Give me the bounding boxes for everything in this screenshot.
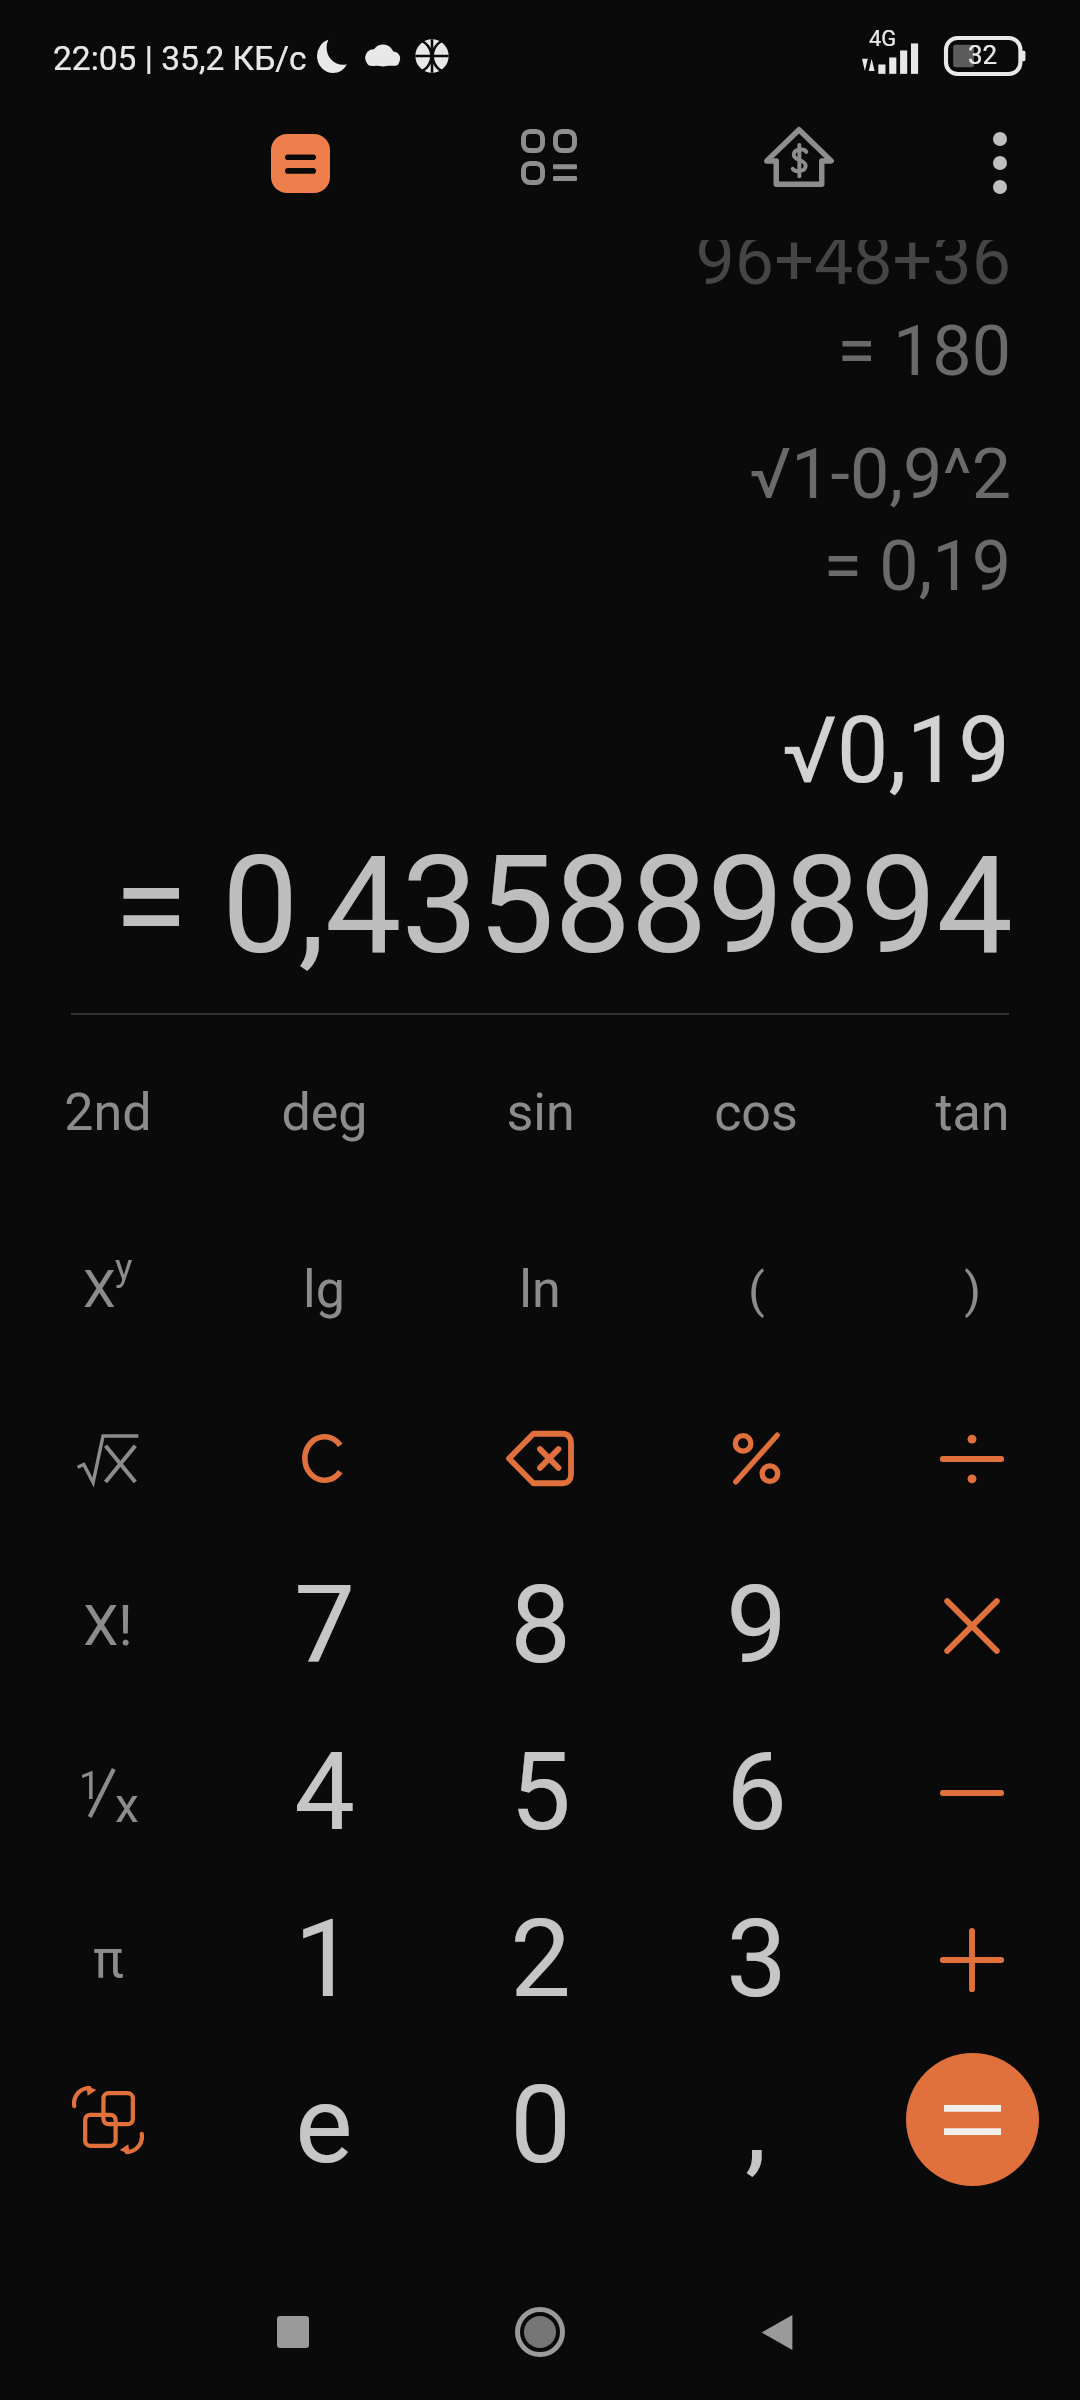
staticText: X! (83, 1593, 133, 1659)
other: Percent (733, 1432, 780, 1485)
button[interactable]: 2nd (0, 1029, 216, 1196)
staticText: y (115, 1246, 133, 1289)
button[interactable]: Multiply (864, 1542, 1080, 1709)
button[interactable]: Back (729, 2284, 825, 2380)
button[interactable]: Backspace (432, 1375, 648, 1542)
button[interactable]: 9 (648, 1542, 864, 1709)
button[interactable]: tan (864, 1029, 1080, 1196)
other: Multiply (941, 1595, 1003, 1657)
button[interactable]: deg (216, 1029, 432, 1196)
button[interactable]: Convert units (0, 2042, 216, 2209)
staticText: 1 (294, 1896, 355, 2023)
button[interactable]: Plus (864, 1876, 1080, 2043)
staticText: ln (519, 1259, 561, 1320)
other: Reciprocal (79, 1768, 137, 1818)
other: Clear (302, 1434, 347, 1483)
other: Equals (906, 2053, 1039, 2186)
other: Backspace (507, 1431, 573, 1486)
button[interactable]: e (216, 2042, 432, 2209)
staticText: 2nd (64, 1082, 152, 1143)
button[interactable]: 3 (648, 1876, 864, 2043)
other: Minus (941, 1762, 1003, 1824)
staticText: sin (506, 1082, 575, 1143)
staticText: 1 (79, 1764, 101, 1809)
button[interactable]: Calculator (258, 121, 342, 205)
other: Divide (941, 1428, 1003, 1490)
other: Convert units (73, 2088, 143, 2152)
button[interactable]: Loan calculator (755, 113, 843, 201)
button[interactable]: ) (864, 1206, 1080, 1373)
staticText: √0,19 (781, 697, 1010, 805)
staticText: e (295, 2062, 353, 2189)
button[interactable]: 6 (648, 1709, 864, 1876)
staticText: 6 (726, 1729, 787, 1856)
button[interactable]: Square root (0, 1375, 216, 1542)
button[interactable]: Divide (864, 1375, 1080, 1542)
staticText: X (83, 1259, 116, 1320)
button[interactable]: Converter (507, 115, 591, 199)
button[interactable]: 4 (216, 1709, 432, 1876)
staticText: = 0,19 (823, 525, 1011, 607)
button[interactable]: 2 (432, 1876, 648, 2043)
staticText: 22:05 | 35,2 КБ/с (53, 39, 307, 78)
button[interactable]: ln (432, 1206, 648, 1373)
staticText: x (115, 1777, 139, 1827)
staticText: cos (714, 1082, 798, 1143)
button[interactable]: Clear (216, 1375, 432, 1542)
button[interactable]: Recent apps (245, 2284, 341, 2380)
button[interactable]: lg (216, 1206, 432, 1373)
other: Plus (941, 1929, 1003, 1991)
staticText: 0 (510, 2062, 571, 2189)
staticText: ) (964, 1262, 981, 1318)
button[interactable]: X (0, 1206, 216, 1373)
button[interactable]: sin (432, 1029, 648, 1196)
staticText: deg (281, 1082, 368, 1143)
staticText: 5 (510, 1729, 571, 1856)
staticText: 7 (294, 1562, 355, 1689)
button[interactable]: 5 (432, 1709, 648, 1876)
staticText: √1-0,9^2 (749, 433, 1011, 515)
button[interactable]: More options (956, 119, 1044, 207)
button[interactable]: 1 (216, 1876, 432, 2043)
button[interactable]: X! (0, 1542, 216, 1709)
button[interactable]: π (0, 1876, 216, 2043)
staticText: 9 (726, 1562, 787, 1689)
staticText: 3 (726, 1896, 787, 2023)
button[interactable]: ( (648, 1206, 864, 1373)
staticText: lg (303, 1259, 345, 1320)
button[interactable]: , (648, 2042, 864, 2209)
staticText: 32 (968, 40, 998, 70)
button[interactable]: Reciprocal (0, 1709, 216, 1876)
button[interactable]: Home (492, 2284, 588, 2380)
staticText: tan (935, 1082, 1010, 1143)
staticText: 8 (510, 1562, 571, 1689)
button[interactable]: 0 (432, 2042, 648, 2209)
button[interactable]: Percent (648, 1375, 864, 1542)
staticText: = 0,435889894 (113, 826, 1013, 985)
staticText: π (93, 1930, 124, 1990)
staticText: 4 (294, 1729, 355, 1856)
staticText: 96+48+36 (695, 240, 1011, 301)
staticText: 2 (510, 1896, 571, 2023)
staticText: , (745, 2062, 767, 2189)
other: Square root (77, 1434, 139, 1483)
button[interactable]: Equals (864, 2042, 1080, 2209)
staticText: 4G (869, 26, 897, 52)
staticText: = 180 (837, 310, 1011, 392)
button[interactable]: 8 (432, 1542, 648, 1709)
staticText: ( (748, 1262, 765, 1318)
button[interactable]: 7 (216, 1542, 432, 1709)
button[interactable]: cos (648, 1029, 864, 1196)
button[interactable]: Minus (864, 1709, 1080, 1876)
